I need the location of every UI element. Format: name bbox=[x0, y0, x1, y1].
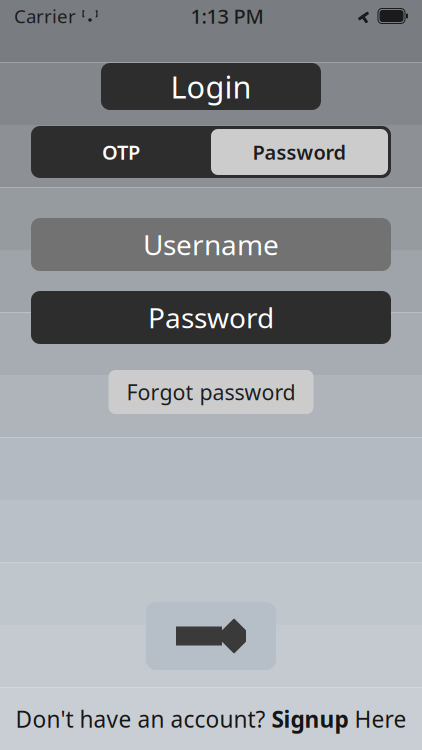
staticText: Login bbox=[170, 66, 251, 107]
button[interactable]: Forgot password bbox=[108, 370, 313, 414]
button[interactable]: OTP bbox=[31, 129, 211, 175]
staticText: Carrier bbox=[14, 4, 76, 28]
button[interactable]: Don't have an account? bbox=[0, 702, 422, 736]
button[interactable]: Password bbox=[211, 129, 388, 175]
button[interactable]: Password bbox=[31, 291, 391, 344]
staticText: Don't have an account? bbox=[15, 704, 271, 734]
staticText: Here bbox=[348, 704, 406, 734]
button[interactable]: Continue bbox=[146, 602, 276, 670]
staticText: Signup bbox=[271, 704, 348, 734]
staticText: Forgot password bbox=[126, 378, 295, 406]
staticText: Username bbox=[143, 226, 279, 263]
staticText: OTP bbox=[102, 139, 140, 165]
staticText: 1:13 PM bbox=[190, 3, 263, 29]
staticText: Password bbox=[148, 299, 274, 336]
button[interactable]: Login bbox=[101, 63, 321, 110]
staticText: Password bbox=[252, 139, 346, 165]
button[interactable]: Username bbox=[31, 218, 391, 271]
